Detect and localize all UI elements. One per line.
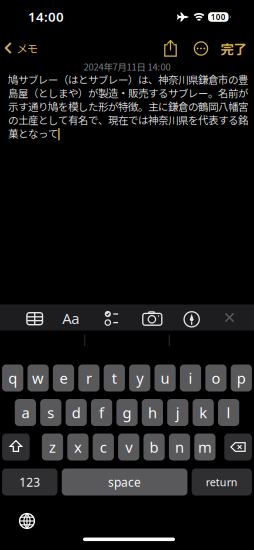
- button[interactable]: 閉じる: [220, 308, 238, 326]
- staticText: w: [32, 368, 44, 388]
- staticText: 菓となって: [8, 126, 58, 141]
- button[interactable]: s: [40, 399, 61, 426]
- button[interactable]: 共有: [160, 38, 180, 58]
- button[interactable]: delete: [224, 433, 252, 460]
- button[interactable]: 123: [2, 468, 57, 495]
- button[interactable]: p: [231, 364, 252, 391]
- staticText: t: [112, 368, 117, 388]
- staticText: s: [47, 403, 54, 422]
- button[interactable]: チェックリスト: [100, 308, 122, 328]
- button[interactable]: i: [180, 364, 201, 391]
- button[interactable]: m: [194, 433, 215, 460]
- button[interactable]: n: [169, 433, 190, 460]
- staticText: f: [99, 403, 104, 422]
- button[interactable]: z: [42, 433, 63, 460]
- staticText: r: [86, 368, 92, 388]
- staticText: n: [175, 437, 184, 457]
- staticText: 2024年7月11日 14:00: [83, 60, 170, 73]
- staticText: 完了: [220, 39, 246, 58]
- button[interactable]: v: [118, 433, 139, 460]
- staticText: の土産として有名で、現在では神奈川県を代表する銘: [8, 112, 248, 127]
- staticText: b: [150, 437, 159, 457]
- staticText: 島屋（としまや）が製造・販売するサブレー。名前が: [8, 85, 248, 100]
- staticText: Aa: [62, 309, 79, 328]
- staticText: g: [122, 403, 131, 422]
- button[interactable]: o: [205, 364, 226, 391]
- button[interactable]: f: [91, 399, 112, 426]
- button[interactable]: w: [27, 364, 49, 391]
- staticText: i: [188, 368, 192, 388]
- button[interactable]: k: [193, 399, 214, 426]
- staticText: space: [108, 474, 141, 490]
- button[interactable]: t: [104, 364, 125, 391]
- button[interactable]: 表: [25, 309, 45, 329]
- staticText: 鳩サブレー（はとサブレー）は、神奈川県鎌倉市の豊: [8, 72, 248, 87]
- button[interactable]: カメラ: [140, 309, 164, 329]
- button[interactable]: その他: [191, 38, 211, 58]
- button[interactable]: マークアップ: [182, 309, 202, 329]
- button[interactable]: a: [15, 399, 36, 426]
- button[interactable]: 書式: [60, 308, 82, 328]
- staticText: e: [59, 368, 67, 388]
- button[interactable]: j: [167, 399, 188, 426]
- button[interactable]: l: [218, 399, 239, 426]
- staticText: 100: [211, 12, 226, 22]
- staticText: 123: [19, 474, 40, 490]
- button[interactable]: 完了: [218, 39, 248, 57]
- staticText: メモ: [17, 40, 37, 56]
- button[interactable]: shift: [2, 433, 30, 460]
- button[interactable]: return: [192, 468, 252, 495]
- staticText: h: [148, 403, 157, 422]
- button[interactable]: x: [67, 433, 88, 460]
- staticText: v: [125, 437, 132, 457]
- staticText: z: [49, 437, 56, 457]
- button[interactable]: h: [142, 399, 163, 426]
- staticText: x: [74, 437, 82, 457]
- staticText: d: [72, 403, 81, 422]
- button[interactable]: y: [129, 364, 150, 391]
- button[interactable]: b: [143, 433, 165, 460]
- button[interactable]: space: [62, 468, 187, 495]
- button[interactable]: q: [2, 364, 23, 391]
- staticText: j: [176, 403, 180, 422]
- button[interactable]: c: [93, 433, 114, 460]
- staticText: c: [100, 437, 107, 457]
- staticText: k: [199, 403, 207, 422]
- staticText: a: [21, 403, 29, 422]
- staticText: o: [211, 368, 220, 388]
- staticText: 14:00: [28, 8, 64, 25]
- staticText: y: [136, 368, 143, 388]
- button[interactable]: 次のキーボード: [17, 511, 37, 531]
- staticText: m: [198, 437, 212, 457]
- staticText: l: [227, 403, 231, 422]
- staticText: 示す通り鳩を模した形が特徴。主に鎌倉の鶴岡八幡宮: [8, 99, 248, 114]
- button[interactable]: u: [154, 364, 176, 391]
- button[interactable]: メモ 戻る: [0, 39, 42, 57]
- button[interactable]: r: [78, 364, 99, 391]
- staticText: return: [206, 475, 238, 489]
- button[interactable]: g: [116, 399, 138, 426]
- staticText: p: [237, 368, 246, 388]
- staticText: u: [161, 368, 170, 388]
- button[interactable]: e: [53, 364, 74, 391]
- staticText: q: [8, 368, 17, 388]
- button[interactable]: d: [66, 399, 87, 426]
